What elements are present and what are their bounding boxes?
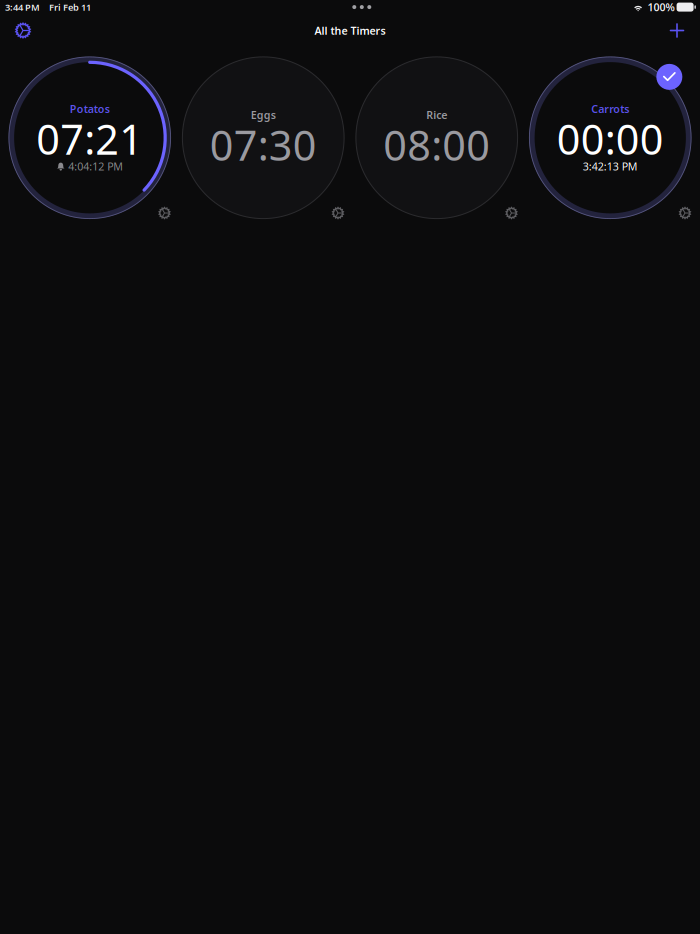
button[interactable]: Timer options [153,202,175,224]
button[interactable]: Timer options [500,202,522,224]
staticText: Carrots [591,102,629,116]
staticText: Rice [426,108,447,122]
staticText: 3:42:13 PM [583,159,638,173]
staticText: 00:00 [557,111,664,166]
staticText: 08:00 [383,117,490,172]
staticText: 4:04:12 PM [68,159,123,173]
button[interactable]: Timer options [327,202,349,224]
staticText: 3:44 PM [5,1,40,13]
staticText: 07:30 [210,117,317,172]
button[interactable]: Add timer [662,17,692,43]
button[interactable]: Settings [8,17,38,43]
staticText: Potatos [70,102,110,116]
staticText: Eggs [251,108,276,122]
staticText: 07:21 [36,111,143,166]
button[interactable]: Timer options [674,202,696,224]
staticText: 100% [648,0,675,14]
staticText: Fri Feb 11 [49,1,91,13]
staticText: All the Timers [314,23,385,38]
